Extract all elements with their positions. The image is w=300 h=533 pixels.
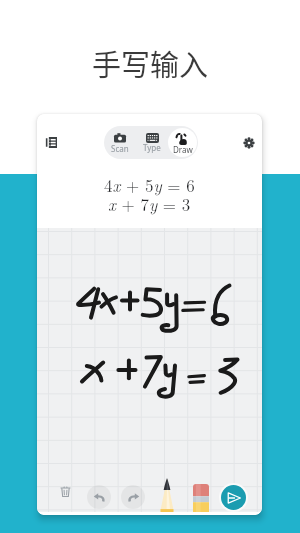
staticText: Type (143, 142, 161, 153)
button[interactable]: Delete (54, 480, 76, 502)
button[interactable]: Type (136, 126, 167, 159)
button[interactable]: History (40, 131, 63, 154)
button[interactable]: Settings (238, 132, 260, 154)
staticText: Draw (173, 144, 193, 155)
button[interactable]: Scan (104, 126, 136, 159)
button[interactable]: Send (219, 483, 248, 512)
button[interactable]: Eraser (190, 481, 212, 512)
button[interactable]: Undo (87, 485, 111, 509)
staticText: 手写输入 (0, 42, 300, 84)
staticText: Scan (111, 143, 129, 154)
button[interactable]: Draw (168, 128, 197, 157)
button[interactable]: Pen (157, 474, 176, 512)
button[interactable]: Redo (121, 485, 145, 509)
staticText: x + 7y = 3 (108, 192, 191, 216)
staticText: 4x + 5y = 6 (104, 173, 195, 197)
